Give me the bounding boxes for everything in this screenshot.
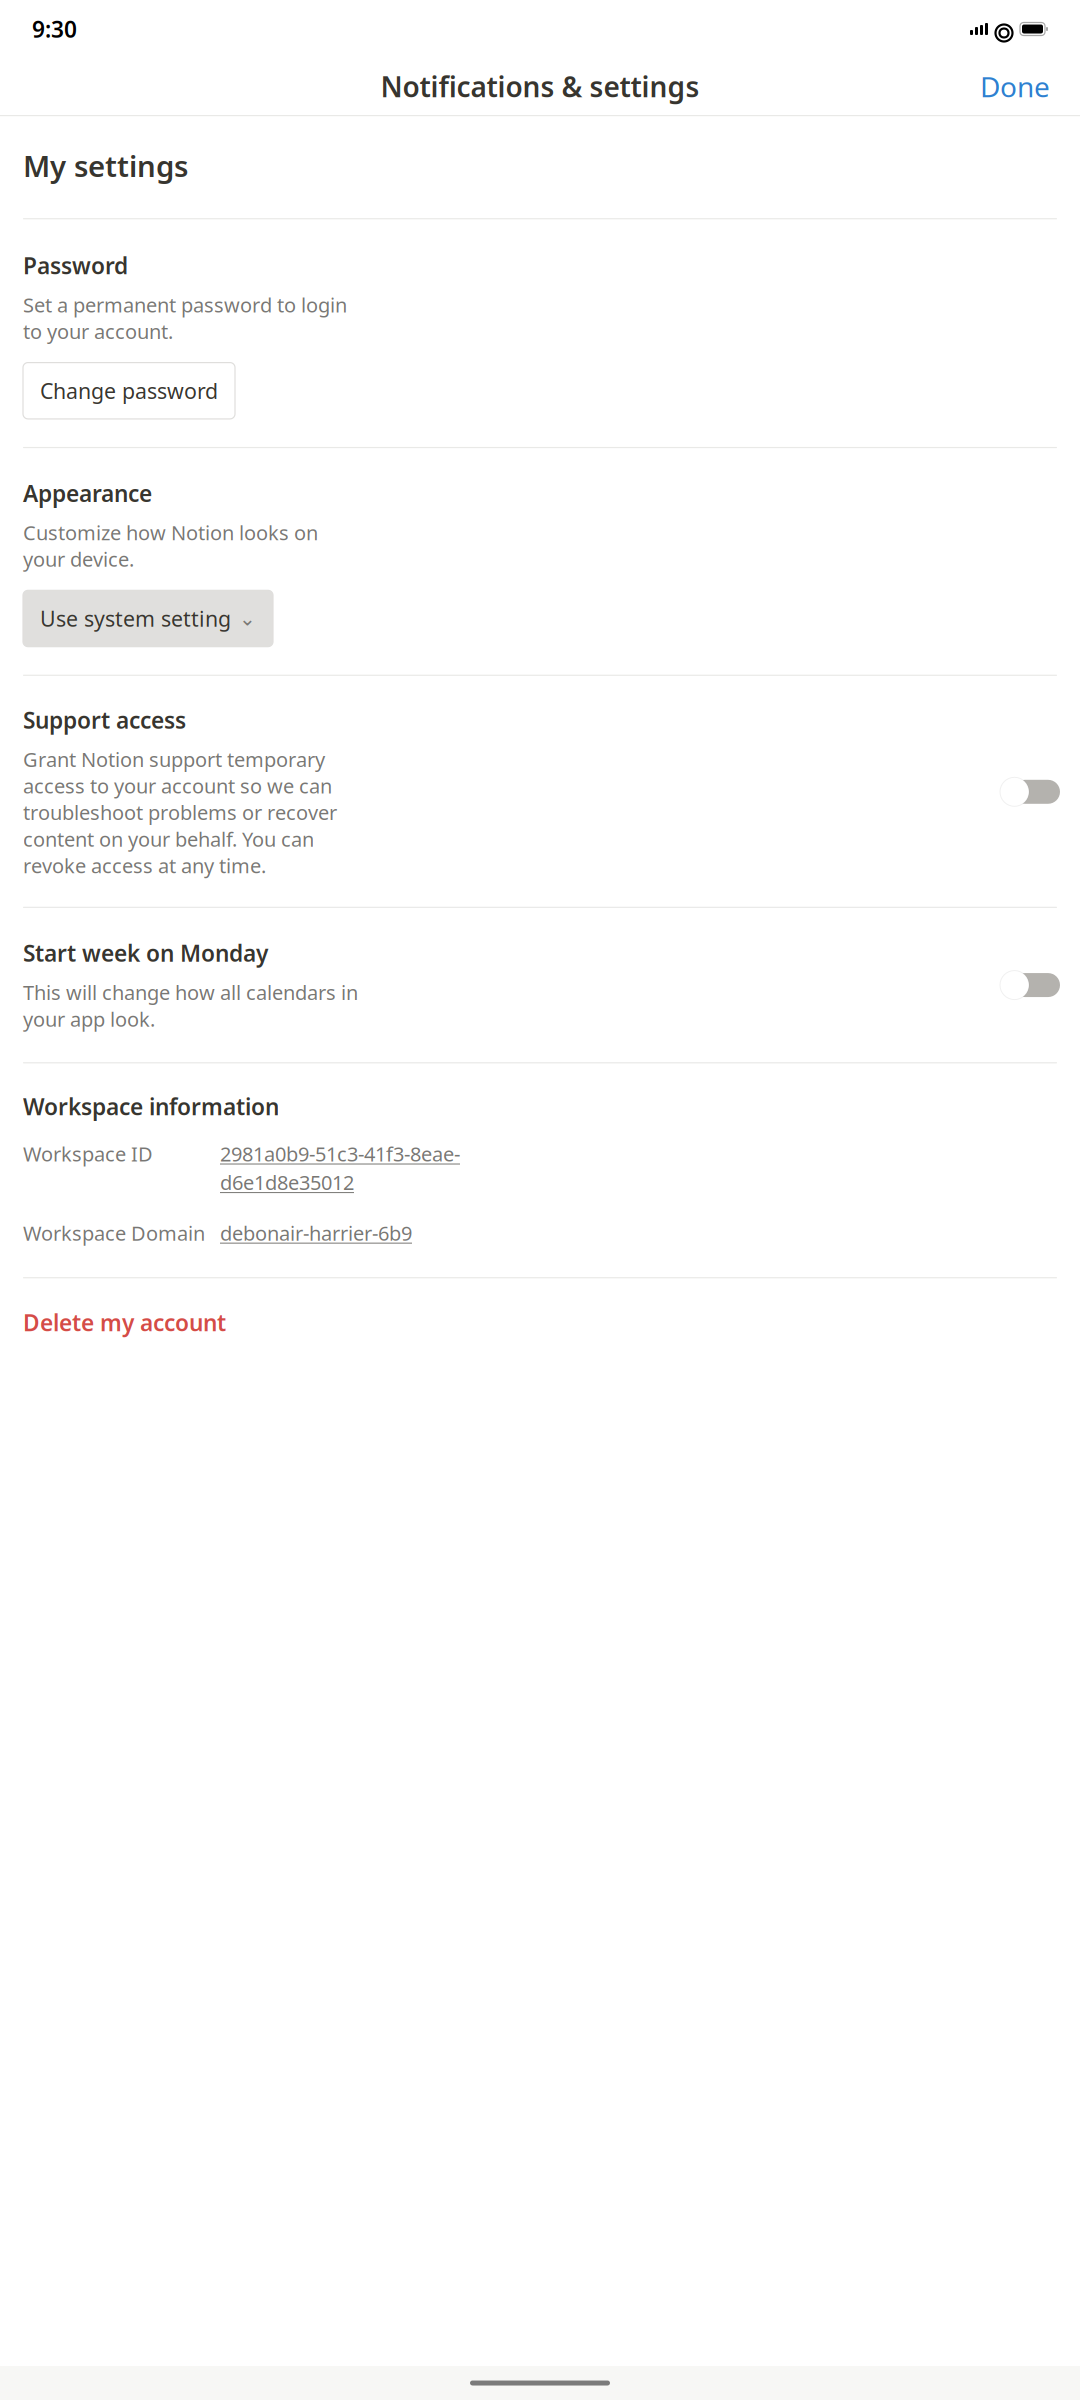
staticText: Notifications & settings <box>380 68 699 105</box>
staticText: Workspace Domain <box>23 1220 205 1246</box>
staticText: 9:30 <box>32 14 77 44</box>
staticText: Delete my account <box>23 1307 226 1337</box>
staticText: Workspace ID <box>23 1140 153 1167</box>
staticText: Done <box>980 68 1050 105</box>
button[interactable]: Toggle setting <box>1000 970 1057 1000</box>
staticText: Customize how Notion looks on your devic… <box>23 519 318 572</box>
staticText: Support access <box>23 705 186 735</box>
staticText: Workspace information <box>23 1091 279 1121</box>
staticText: Appearance <box>23 478 152 508</box>
staticText: Password <box>23 250 128 280</box>
staticText: Set a permanent password to login to you… <box>23 291 347 345</box>
staticText: My settings <box>23 146 188 185</box>
staticText: debonair-harrier-6b9 <box>220 1220 412 1246</box>
button[interactable]: debonair-harrier-6b9 <box>220 1220 1057 1246</box>
staticText: Use system setting <box>40 604 231 633</box>
staticText: ⌄ <box>239 607 256 630</box>
button[interactable]: Toggle setting <box>1000 777 1057 807</box>
staticText: Start week on Monday <box>23 938 268 968</box>
button[interactable]: 2981a0b9-51c3-41f3-8eae- <box>220 1140 1057 1196</box>
button[interactable]: Delete my account <box>23 1307 1057 1337</box>
staticText: 2981a0b9-51c3-41f3-8eae- <box>220 1140 460 1167</box>
staticText: Grant Notion support temporary access to… <box>23 746 337 879</box>
staticText: This will change how all calendars in yo… <box>23 979 358 1032</box>
button[interactable]: Use system setting <box>23 590 273 647</box>
button[interactable]: Change password <box>23 363 235 419</box>
staticText: d6e1d8e35012 <box>220 1169 354 1196</box>
button[interactable]: Done <box>976 60 1054 113</box>
staticText: Change password <box>40 377 218 405</box>
